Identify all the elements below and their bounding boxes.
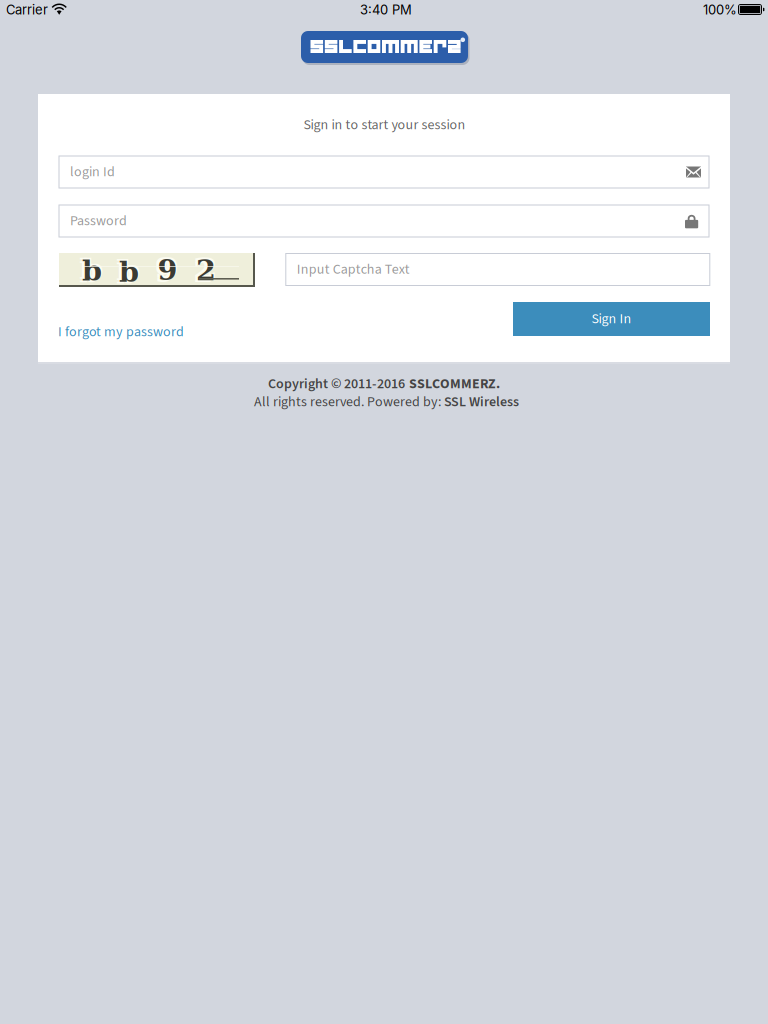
button[interactable]: Captcha image [59, 253, 255, 287]
staticText: 2 [196, 253, 216, 287]
staticText: 2 [193, 255, 213, 289]
staticText: 9 [155, 255, 175, 289]
staticText: Input Captcha Text [297, 259, 410, 279]
staticText: 2 [193, 251, 213, 285]
staticText: login Id [70, 162, 115, 182]
staticText: Password [70, 211, 127, 231]
staticText: 9 [159, 251, 179, 285]
staticText: 9 [157, 253, 177, 287]
staticText: All rights reserved. Powered by: [254, 392, 444, 412]
button[interactable]: Password [58, 204, 709, 237]
staticText: b [116, 257, 136, 290]
staticText: I forgot my password [58, 322, 184, 342]
staticText: 100% [703, 2, 737, 18]
staticText: b [79, 255, 99, 289]
staticText: b [121, 253, 141, 287]
button[interactable]: I forgot my password [58, 322, 184, 342]
staticText: SSLCOMMERZ. [409, 374, 500, 394]
staticText: 9 [155, 251, 175, 285]
staticText: b [84, 252, 104, 285]
staticText: b [82, 254, 102, 287]
staticText: Copyright © 2011-2016 [268, 374, 408, 394]
staticText: b [119, 255, 139, 288]
staticText: Carrier [6, 2, 48, 18]
staticText: Sign in to start your session [303, 115, 465, 135]
staticText: b [116, 253, 136, 287]
staticText: b [79, 252, 99, 285]
staticText: 2 [198, 251, 218, 285]
button[interactable]: Input Captcha Text [285, 253, 710, 286]
button[interactable]: Sign In [513, 302, 710, 336]
staticText: Sign In [591, 309, 631, 329]
button[interactable]: login Id [58, 155, 709, 188]
staticText: 3:40 PM [360, 2, 412, 18]
staticText: SSL Wireless [444, 392, 519, 412]
